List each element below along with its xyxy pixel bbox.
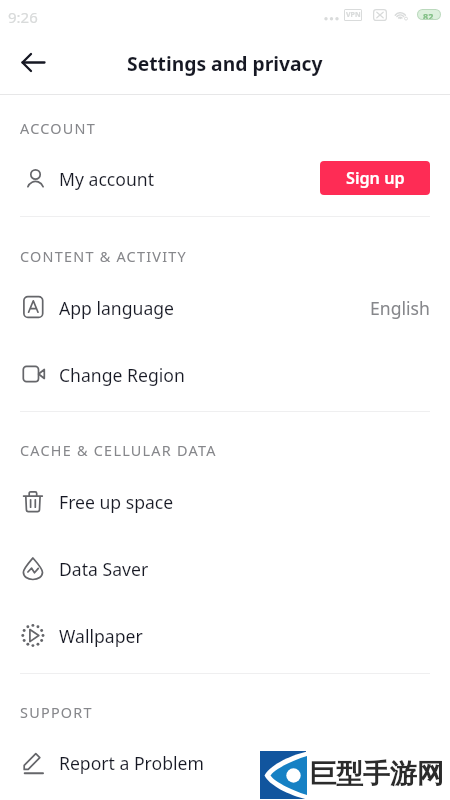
- staticText: SUPPORT: [20, 703, 93, 723]
- staticText: Wallpaper: [59, 624, 143, 648]
- button[interactable]: My account: [0, 145, 450, 212]
- staticText: CONTENT & ACTIVITY: [20, 247, 187, 267]
- button[interactable]: Data Saver: [0, 535, 450, 602]
- staticText: Sign up: [346, 167, 405, 189]
- staticText: ACCOUNT: [20, 119, 96, 139]
- button[interactable]: Back: [10, 39, 56, 85]
- button[interactable]: Report a Problem: [0, 729, 450, 796]
- staticText: English: [370, 296, 430, 320]
- staticText: Report a Problem: [59, 751, 204, 775]
- button[interactable]: App language: [0, 274, 450, 341]
- button[interactable]: Free up space: [0, 468, 450, 535]
- staticText: My account: [59, 167, 155, 191]
- staticText: 9:26: [8, 7, 38, 27]
- staticText: 巨型手游网: [309, 757, 444, 791]
- staticText: Settings and privacy: [127, 50, 323, 76]
- staticText: Data Saver: [59, 557, 149, 581]
- staticText: Change Region: [59, 363, 185, 387]
- button[interactable]: Change Region: [0, 341, 450, 408]
- staticText: App language: [59, 296, 175, 320]
- button[interactable]: Wallpaper: [0, 602, 450, 669]
- staticText: Free up space: [59, 490, 174, 514]
- staticText: CACHE & CELLULAR DATA: [20, 441, 217, 461]
- button[interactable]: Sign up: [320, 161, 430, 195]
- staticText: 82: [423, 10, 434, 19]
- staticText: VPN: [346, 10, 361, 20]
